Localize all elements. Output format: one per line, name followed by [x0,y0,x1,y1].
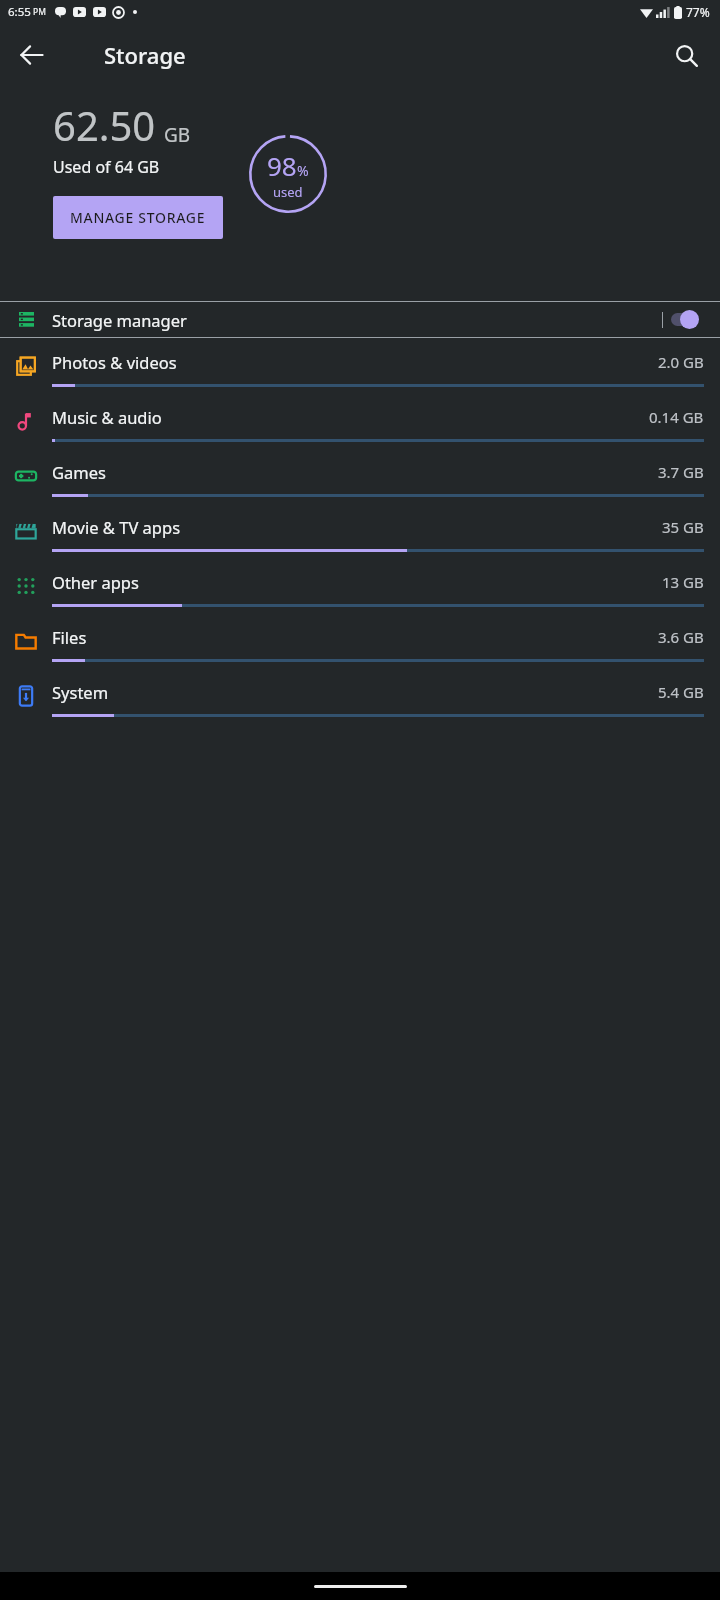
staticText: 3.6 GB [658,627,704,647]
staticText: 2.0 GB [658,352,704,372]
staticText: 35 GB [662,517,704,537]
button[interactable]: Games [0,448,720,503]
staticText: 13 GB [662,572,704,592]
staticText: Files [52,626,658,648]
button[interactable]: Photos & videos [0,338,720,393]
staticText: 62.50 [53,98,156,152]
staticText: GB [164,122,191,148]
staticText: Photos & videos [52,351,658,373]
button[interactable]: Back [8,31,56,79]
button[interactable]: Search [662,31,710,79]
staticText: MANAGE STORAGE [70,208,206,227]
staticText: used [273,183,303,201]
button[interactable]: System [0,668,720,723]
staticText: Games [52,461,658,483]
staticText: PM [33,6,46,18]
button[interactable]: Movie & TV apps [0,503,720,558]
button[interactable]: Storage manager [0,302,720,337]
staticText: 0.14 GB [649,407,704,427]
button[interactable]: Files [0,613,720,668]
staticText: 77% [686,4,710,20]
staticText: Other apps [52,571,662,593]
staticText: % [297,161,309,180]
button[interactable]: Music & audio [0,393,720,448]
staticText: 6:55 [8,4,31,20]
staticText: Movie & TV apps [52,516,662,538]
staticText: Music & audio [52,406,649,428]
staticText: 98 [267,148,297,183]
staticText: Storage manager [52,309,662,331]
button[interactable]: Storage manager toggle [663,302,715,337]
button[interactable]: Other apps [0,558,720,613]
staticText: 5.4 GB [658,682,704,702]
staticText: Used of 64 GB [53,156,160,178]
staticText: System [52,681,658,703]
staticText: 3.7 GB [658,462,704,482]
staticText: Storage [104,40,186,70]
button[interactable]: MANAGE STORAGE [53,196,223,239]
